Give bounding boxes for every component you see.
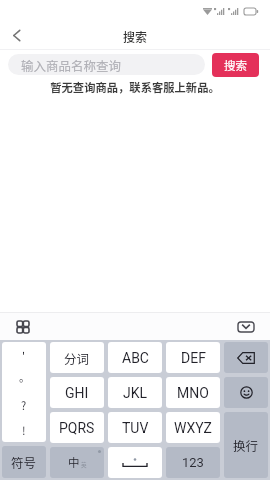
staticText: 中 (68, 454, 80, 471)
button[interactable]: Back (0, 22, 32, 49)
staticText: 123 (182, 455, 204, 470)
button[interactable]: JKL (108, 377, 162, 408)
button[interactable]: ABC (108, 342, 162, 373)
staticText: JKL (123, 385, 148, 401)
staticText: DEF (181, 350, 206, 366)
staticText: ABC (122, 350, 149, 366)
button[interactable]: 搜索 (212, 53, 259, 77)
button[interactable]: Hide keyboard (235, 316, 257, 338)
staticText: PQRS (59, 420, 95, 436)
staticText: 搜索 (123, 28, 148, 45)
staticText: MNO (177, 385, 209, 401)
staticText: 。 (19, 369, 30, 385)
button[interactable]: WXYZ (166, 412, 220, 443)
staticText: 换行 (233, 436, 259, 454)
staticText: ? (21, 397, 27, 413)
staticText: WXYZ (174, 420, 212, 436)
button[interactable]: Space (108, 447, 162, 478)
button[interactable]: 分词 (50, 342, 104, 373)
button[interactable]: GHI (50, 377, 104, 408)
button[interactable]: 符号 (2, 446, 46, 478)
button[interactable]: TUV (108, 412, 162, 443)
button[interactable]: 中 (50, 447, 104, 478)
staticText: ' (22, 347, 26, 363)
staticText: 暂无查询商品，联系客服上新品。 (50, 79, 220, 95)
button[interactable]: Emoji (224, 377, 268, 408)
button[interactable]: MNO (166, 377, 220, 408)
button[interactable]: 换行 (224, 412, 268, 478)
staticText: 分词 (64, 349, 90, 367)
staticText: 搜索 (224, 57, 247, 74)
button[interactable]: PQRS (50, 412, 104, 443)
button[interactable]: 输入商品名称查询 (8, 54, 205, 75)
button[interactable]: 123 (166, 447, 220, 478)
staticText: ! (22, 422, 26, 438)
staticText: TUV (122, 420, 149, 436)
button[interactable]: DEF (166, 342, 220, 373)
staticText: GHI (65, 385, 89, 401)
staticText: 符号 (11, 453, 37, 471)
staticText: 输入商品名称查询 (21, 56, 122, 74)
button[interactable]: ' (2, 342, 46, 442)
button[interactable]: Keyboard layout (13, 317, 33, 337)
staticText: 英 (81, 461, 87, 469)
button[interactable]: Backspace (224, 342, 268, 373)
